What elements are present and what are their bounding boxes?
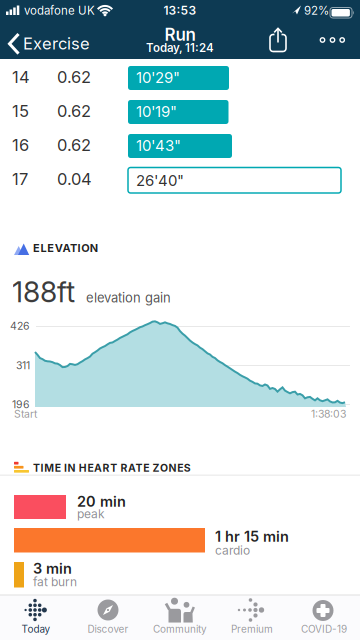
staticText: 188ft xyxy=(12,275,75,309)
staticText: Exercise xyxy=(23,33,90,53)
staticText: Premium xyxy=(231,623,273,635)
staticText: 0.04 xyxy=(57,169,92,189)
staticText: Run xyxy=(164,24,195,45)
staticText: 16 xyxy=(12,135,29,155)
button[interactable]: Community xyxy=(144,595,216,640)
staticText: 17 xyxy=(12,169,28,189)
button[interactable]: More xyxy=(317,32,348,48)
staticText: 10'19" xyxy=(136,102,177,121)
staticText: cardio xyxy=(215,543,250,558)
staticText: 15 xyxy=(12,101,29,121)
staticText: 1 hr 15 min xyxy=(215,528,289,545)
button[interactable]: COVID-19 xyxy=(288,595,360,640)
button[interactable]: Today xyxy=(0,595,72,640)
staticText: TIME IN HEART RATE ZONES xyxy=(33,462,191,474)
staticText: ELEVATION xyxy=(33,241,98,255)
staticText: vodafone UK xyxy=(24,3,95,17)
staticText: 26'40" xyxy=(136,171,184,189)
staticText: Discover xyxy=(87,623,128,635)
staticText: 1:38:03 xyxy=(311,408,346,420)
staticText: 10'29" xyxy=(136,68,180,87)
staticText: 14 xyxy=(12,67,30,87)
staticText: fat burn xyxy=(33,575,77,589)
staticText: Today xyxy=(21,623,50,635)
button[interactable]: Share xyxy=(266,26,292,56)
staticText: Today, 11:24 xyxy=(146,41,214,55)
staticText: 311 xyxy=(16,359,30,372)
button[interactable]: Exercise xyxy=(6,28,98,60)
staticText: Community xyxy=(153,623,207,635)
staticText: elevation gain xyxy=(86,290,171,306)
staticText: 13:53 xyxy=(163,3,196,18)
staticText: 10'43" xyxy=(136,136,181,155)
staticText: 0.62 xyxy=(57,101,91,121)
staticText: 0.62 xyxy=(57,67,91,87)
staticText: 196 xyxy=(12,398,30,411)
staticText: 3 min xyxy=(33,560,72,577)
button[interactable]: Discover xyxy=(72,595,144,640)
button[interactable]: Premium xyxy=(216,595,288,640)
staticText: 426 xyxy=(10,320,30,332)
staticText: peak xyxy=(77,507,105,521)
staticText: 0.62 xyxy=(57,135,91,155)
staticText: COVID-19 xyxy=(301,623,347,635)
staticText: Start xyxy=(14,408,37,420)
staticText: 92% xyxy=(304,3,329,17)
staticText: 20 min xyxy=(77,493,126,510)
